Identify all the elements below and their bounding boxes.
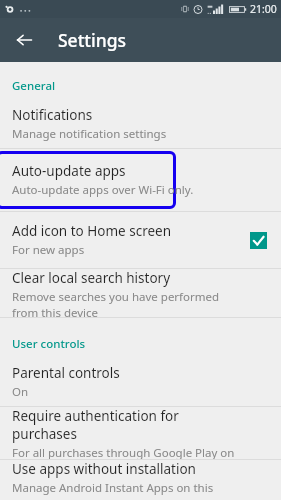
button[interactable]: Use apps without installation [0, 460, 281, 500]
staticText: 21:00 [250, 2, 277, 16]
staticText: Clear local search history [12, 269, 171, 287]
staticText: Auto-update apps [12, 162, 126, 180]
staticText: Remove searches you have performed from … [12, 289, 237, 317]
staticText: Require authentication for purchases [12, 407, 237, 443]
staticText: General [12, 78, 56, 94]
staticText: Auto-update apps over Wi-Fi only. [12, 182, 194, 198]
staticText: For all purchases through Google Play on… [12, 445, 237, 459]
staticText: Settings [58, 28, 127, 52]
button[interactable]: Add icon to Home screen [0, 212, 281, 268]
button[interactable]: Require authentication for purchases [0, 407, 281, 459]
staticText: On [12, 384, 29, 400]
staticText: Manage Android Instant Apps on this devi… [12, 480, 237, 500]
staticText: User controls [12, 336, 86, 352]
staticText: Add icon to Home screen [12, 222, 172, 240]
staticText: Notifications [12, 106, 93, 124]
button[interactable]: Notifications [0, 100, 281, 148]
staticText: Use apps without installation [12, 460, 196, 478]
button[interactable]: Back [8, 24, 40, 56]
staticText: Parental controls [12, 364, 120, 382]
button[interactable]: Add icon to Home screen checkbox [247, 229, 269, 251]
button[interactable]: Clear local search history [0, 269, 281, 317]
staticText: For new apps [12, 242, 85, 258]
button[interactable]: Auto-update apps [0, 149, 281, 211]
button[interactable]: Parental controls [0, 358, 281, 406]
staticText: Manage notification settings [12, 126, 167, 142]
